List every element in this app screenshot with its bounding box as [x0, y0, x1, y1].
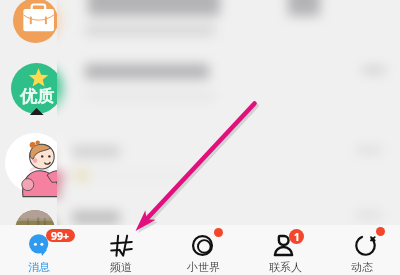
staticText: 优质	[20, 86, 54, 107]
button[interactable]: 联系人	[244, 225, 326, 275]
staticText: 动态	[351, 260, 373, 274]
button[interactable]: 消息	[0, 225, 80, 275]
button[interactable]: 小世界	[162, 225, 244, 275]
staticText: 优质	[20, 86, 54, 107]
staticText: 联系人	[269, 260, 302, 274]
button[interactable]: 动态	[326, 225, 398, 275]
staticText: 消息	[28, 260, 50, 274]
button[interactable]: 频道	[80, 225, 162, 275]
staticText: 小世界	[187, 260, 220, 274]
staticText: 1	[294, 230, 300, 244]
staticText: 频道	[110, 260, 132, 274]
staticText: 99+	[51, 229, 70, 242]
